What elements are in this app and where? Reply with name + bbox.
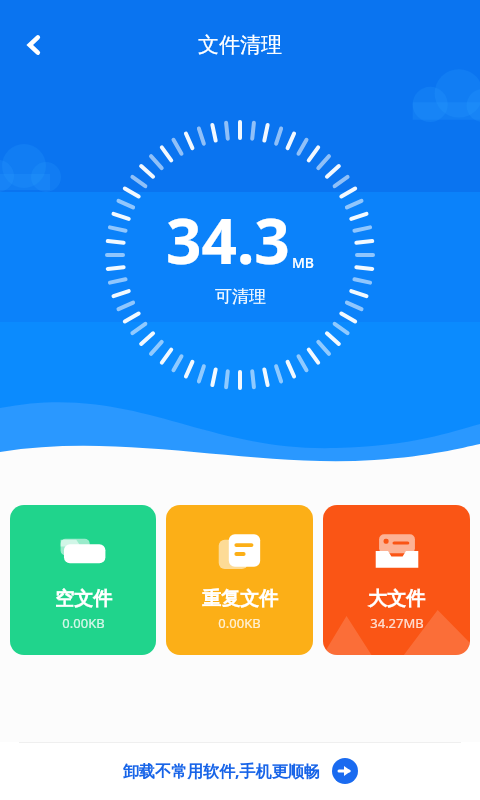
staticText: 34.3 — [166, 198, 290, 282]
button[interactable]: 大文件 — [323, 505, 470, 655]
other: Go — [332, 758, 358, 784]
staticText: 文件清理 — [198, 32, 282, 58]
staticText: MB — [292, 253, 315, 272]
staticText: 重复文件 — [202, 587, 278, 611]
button[interactable]: 重复文件 — [166, 505, 313, 655]
staticText: 空文件 — [55, 587, 112, 611]
button[interactable]: Back — [8, 19, 60, 71]
staticText: 34.27MB — [370, 614, 424, 632]
staticText: 0.00KB — [218, 614, 261, 632]
staticText: 0.00KB — [62, 614, 105, 632]
staticText: 卸载不常用软件,手机更顺畅 — [123, 760, 320, 782]
staticText: 大文件 — [368, 587, 425, 611]
button[interactable]: 空文件 — [10, 505, 156, 655]
staticText: 可清理 — [215, 286, 266, 307]
button[interactable]: 卸载不常用软件,手机更顺畅 — [0, 742, 480, 800]
